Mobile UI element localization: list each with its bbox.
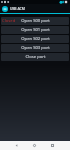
- button[interactable]: Back: [11, 141, 22, 150]
- staticText: Open S00 port: [21, 18, 50, 24]
- button[interactable]: Open S02 port: [1, 35, 69, 43]
- button[interactable]: Home: [29, 141, 40, 150]
- button[interactable]: Open S00 port: [1, 17, 69, 25]
- button[interactable]: Close port: [1, 53, 69, 61]
- button[interactable]: Recents: [47, 141, 58, 150]
- staticText: Open S01 port: [21, 27, 50, 33]
- staticText: Open S02 port: [21, 36, 50, 42]
- staticText: USB ACM: [10, 6, 25, 11]
- staticText: Open S03 port: [21, 45, 50, 51]
- staticText: Closed: [2, 18, 16, 24]
- button[interactable]: Open S03 port: [1, 44, 69, 52]
- button[interactable]: Open S01 port: [1, 26, 69, 34]
- staticText: Close port: [25, 54, 46, 60]
